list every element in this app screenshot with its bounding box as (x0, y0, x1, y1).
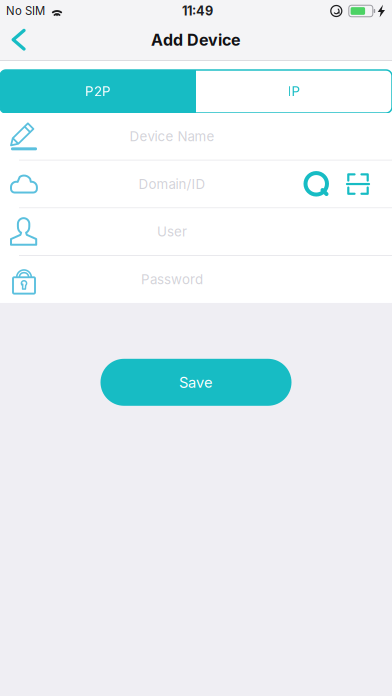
button[interactable]: Domain/ID (0, 161, 296, 207)
staticText: P2P (85, 83, 111, 99)
staticText: No SIM (6, 4, 45, 18)
staticText: IP (287, 83, 300, 99)
staticText: Add Device (151, 30, 241, 50)
button[interactable]: P2P (0, 70, 196, 113)
staticText: Domain/ID (138, 176, 205, 192)
staticText: Password (141, 271, 203, 287)
button[interactable]: Search (296, 161, 337, 207)
button[interactable]: Device Name (0, 113, 392, 160)
staticText: User (157, 224, 187, 240)
button[interactable]: User (0, 208, 392, 255)
button[interactable]: IP (196, 70, 392, 113)
staticText: Device Name (129, 128, 214, 144)
staticText: Save (179, 373, 213, 391)
button[interactable]: Scan QR code (337, 161, 379, 207)
staticText: 11:49 (182, 3, 213, 19)
button[interactable]: Save (100, 359, 291, 406)
button[interactable]: Password (0, 256, 392, 303)
button[interactable]: Back (0, 23, 40, 59)
